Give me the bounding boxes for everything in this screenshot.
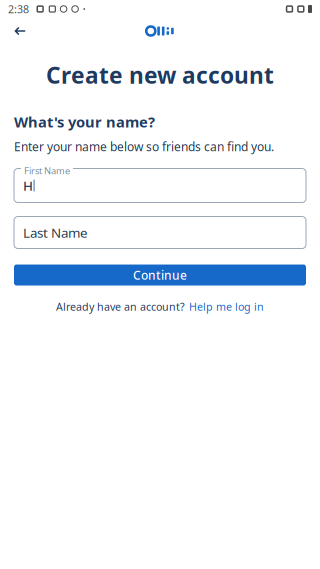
staticText: Already have an account? — [56, 299, 185, 314]
staticText: Last Name — [23, 224, 88, 241]
staticText: Continue — [133, 267, 187, 283]
staticText: Help me log in — [189, 299, 264, 314]
staticText: First Name — [24, 164, 70, 177]
staticText: What's your name? — [14, 112, 155, 132]
staticText: 2:38 — [8, 2, 29, 16]
staticText: Enter your name below so friends can fin… — [14, 139, 274, 154]
button[interactable]: Help me log in — [189, 299, 264, 314]
button[interactable]: First Name — [14, 168, 306, 202]
button[interactable]: Last Name — [14, 216, 306, 248]
staticText: H — [23, 177, 33, 194]
button[interactable]: Back — [4, 18, 36, 44]
button[interactable]: Continue — [14, 264, 306, 285]
staticText: Create new account — [46, 60, 274, 90]
